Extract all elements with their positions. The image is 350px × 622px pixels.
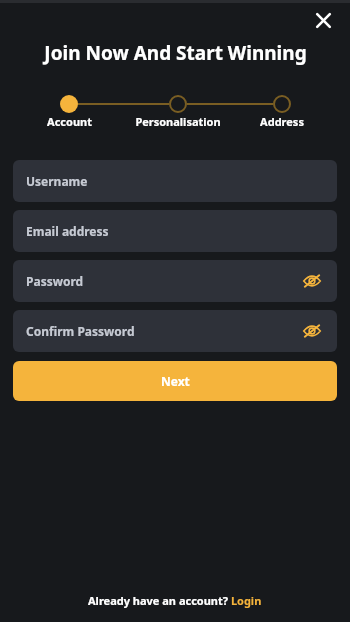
staticText: Account (47, 114, 92, 129)
button[interactable]: Confirm Password (13, 310, 337, 352)
button[interactable]: Already have an account? Login (88, 593, 262, 608)
button[interactable]: Email address (13, 210, 337, 252)
button[interactable]: Personalisation (122, 114, 234, 129)
staticText: Next (161, 373, 190, 389)
button[interactable]: Password (13, 260, 337, 302)
button[interactable]: Next (13, 361, 337, 401)
staticText: Confirm Password (26, 323, 135, 339)
staticText: Personalisation (135, 114, 221, 129)
button[interactable]: Account (13, 114, 125, 129)
staticText: Username (26, 173, 88, 189)
button[interactable]: Close (308, 5, 338, 35)
button[interactable]: Address (226, 114, 338, 129)
staticText: Address (260, 114, 304, 129)
staticText: Password (26, 273, 84, 289)
staticText: Already have an account? Login (88, 593, 262, 608)
staticText: Email address (26, 223, 109, 239)
button[interactable]: Show password (299, 318, 325, 344)
staticText: Join Now And Start Winning (44, 40, 307, 66)
button[interactable]: Show password (299, 268, 325, 294)
button[interactable]: Username (13, 160, 337, 202)
